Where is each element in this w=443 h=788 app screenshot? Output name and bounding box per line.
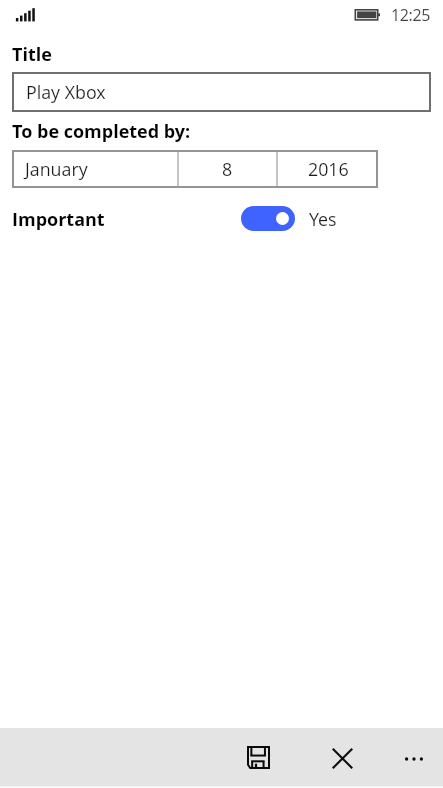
staticText: Play Xbox: [26, 80, 106, 104]
staticText: January: [25, 157, 88, 181]
button[interactable]: Save: [231, 730, 285, 784]
button[interactable]: January: [12, 150, 177, 188]
button[interactable]: More options: [387, 732, 441, 786]
staticText: To be completed by:: [12, 119, 191, 144]
staticText: 8: [222, 157, 233, 181]
button[interactable]: 2016: [278, 150, 378, 188]
staticText: Title: [12, 42, 52, 67]
button[interactable]: Cancel: [315, 731, 369, 785]
staticText: 2016: [308, 157, 349, 181]
staticText: Important: [12, 207, 105, 232]
staticText: 12:25: [391, 4, 431, 26]
staticText: Yes: [309, 207, 337, 231]
button[interactable]: 8: [179, 150, 276, 188]
button[interactable]: Play Xbox: [12, 72, 431, 112]
button[interactable]: Important toggle: [241, 206, 295, 231]
